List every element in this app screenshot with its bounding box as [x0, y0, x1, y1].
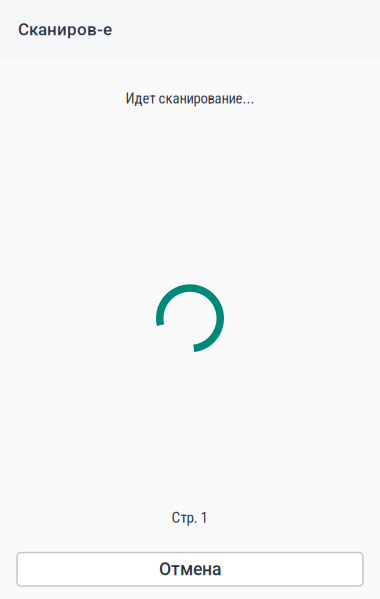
staticText: Идет сканирование...	[125, 90, 254, 107]
staticText: Сканиров-е	[18, 20, 112, 39]
button[interactable]: Отмена	[17, 552, 363, 586]
staticText: Отмена	[159, 559, 221, 579]
staticText: Стр. 1	[171, 509, 208, 526]
